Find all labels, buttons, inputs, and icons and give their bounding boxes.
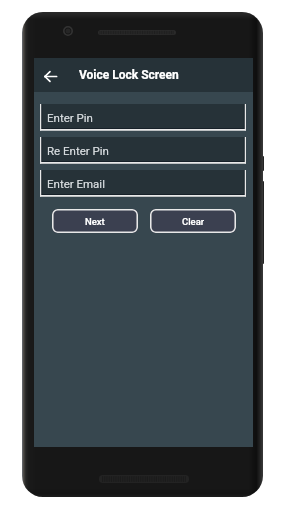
button[interactable]: Enter Pin (40, 104, 246, 131)
staticText: Enter Email (47, 177, 105, 190)
button[interactable]: Enter Email (40, 170, 246, 197)
staticText: Clear (182, 216, 205, 227)
staticText: Next (85, 216, 105, 227)
staticText: Enter Pin (47, 111, 93, 124)
button[interactable]: Re Enter Pin (40, 137, 246, 164)
button[interactable]: Clear (150, 209, 236, 233)
button[interactable]: Next (52, 209, 138, 233)
button[interactable]: Back (34, 58, 65, 92)
staticText: Re Enter Pin (47, 144, 109, 157)
staticText: Voice Lock Screen (79, 68, 179, 82)
